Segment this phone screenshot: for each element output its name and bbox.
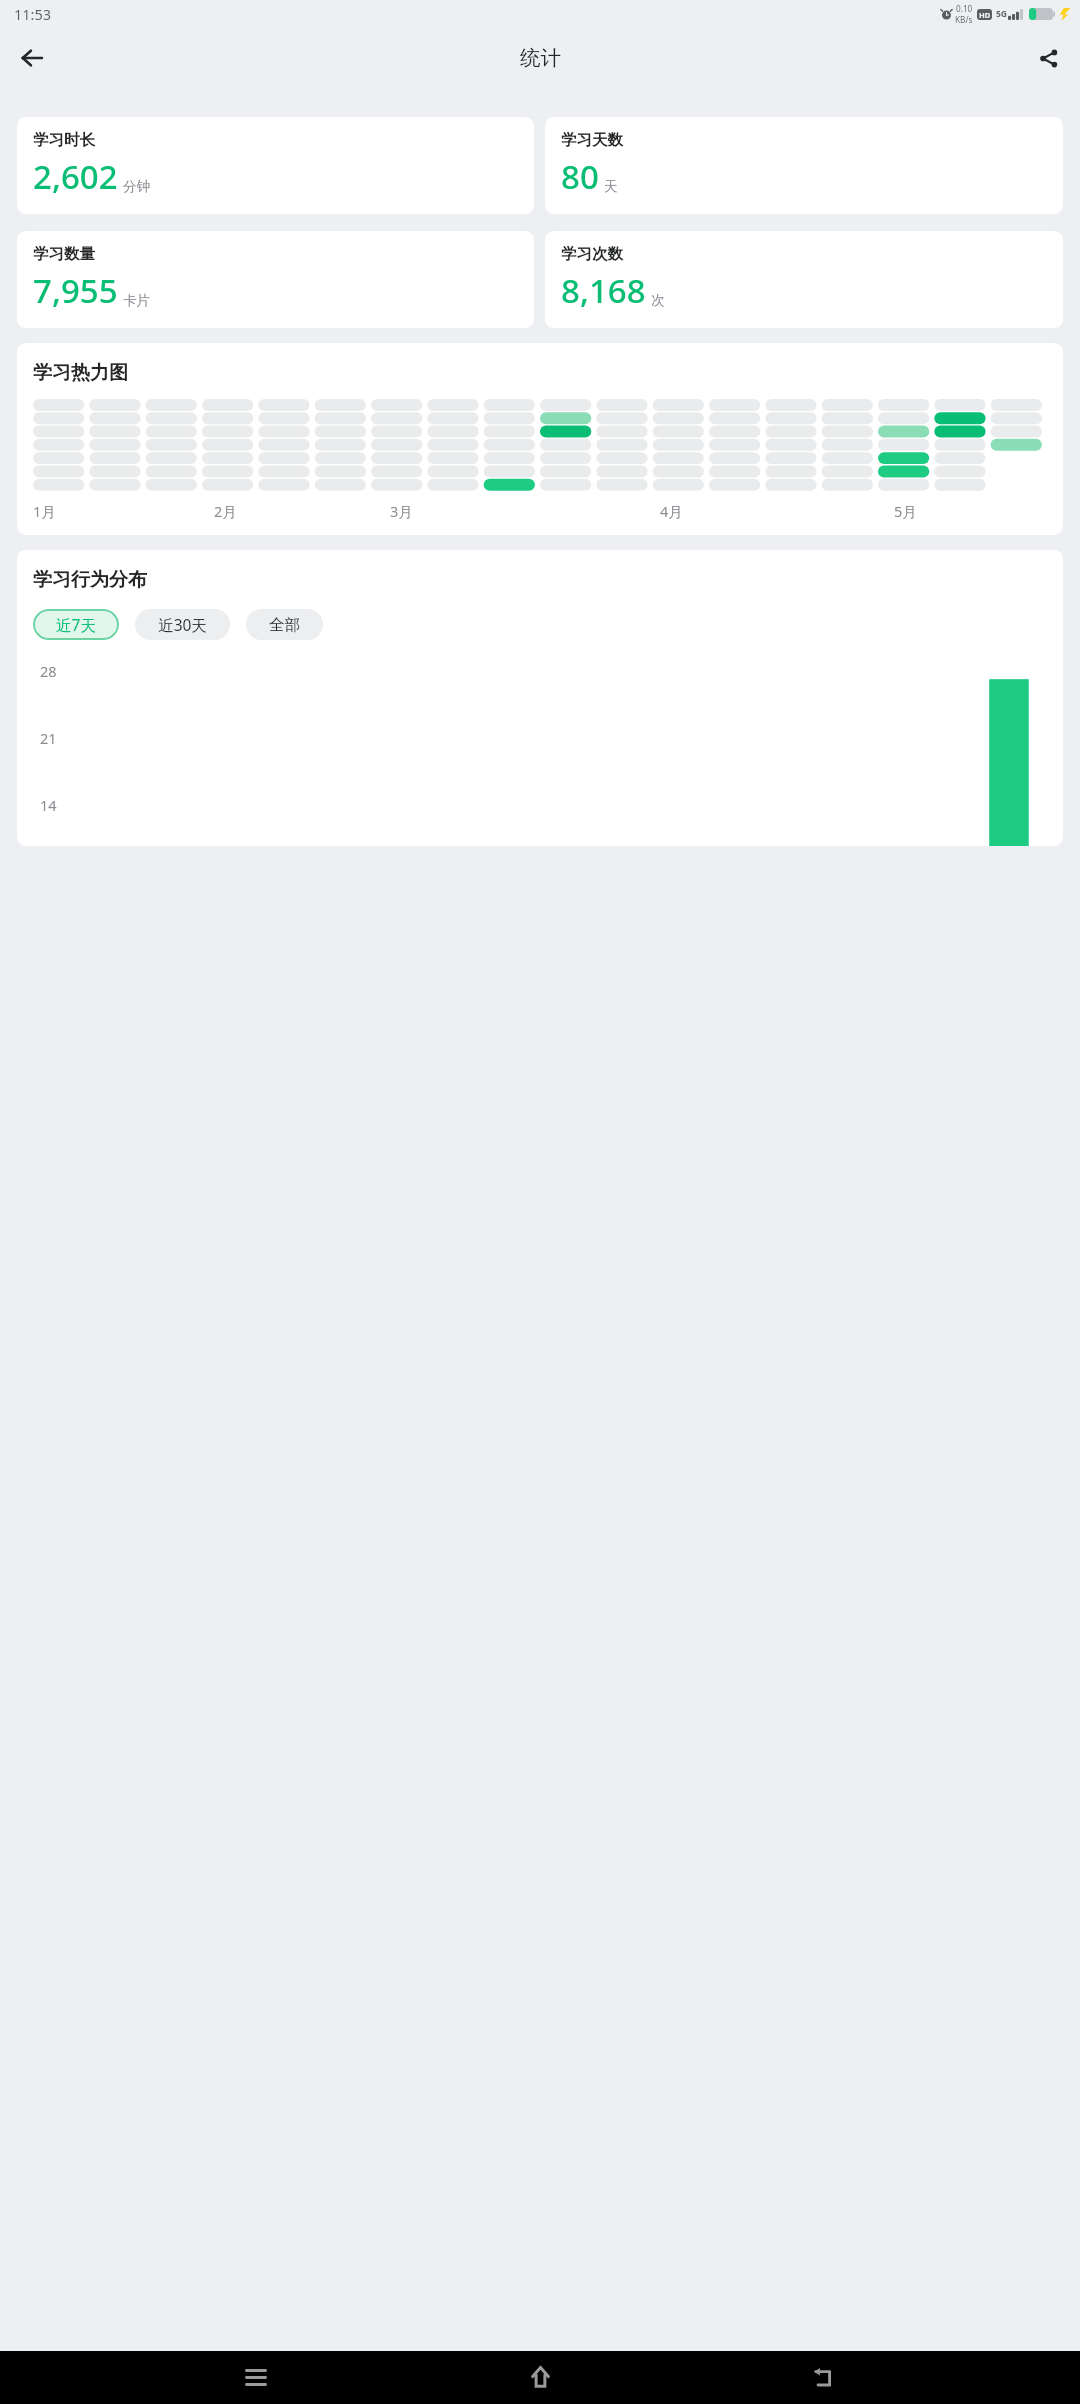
button[interactable]: 学习次数 [545, 231, 1063, 328]
staticText: 学习热力图 [33, 361, 128, 385]
staticText: 学习行为分布 [33, 568, 147, 592]
staticText: 学习时长 [33, 130, 95, 150]
staticText: 1月 [33, 501, 56, 521]
button[interactable]: 全部 [246, 609, 323, 640]
staticText: 5G [996, 8, 1008, 20]
button[interactable]: 近30天 [135, 609, 230, 640]
staticText: 7,955 [33, 268, 118, 313]
button[interactable]: 学习数量 [17, 231, 534, 328]
staticText: 2月 [214, 501, 237, 521]
staticText: 近30天 [158, 614, 207, 635]
staticText: 11:53 [14, 4, 52, 24]
staticText: 21 [40, 728, 57, 748]
staticText: 8,168 [561, 268, 646, 313]
staticText: 全部 [269, 615, 300, 635]
button[interactable]: Share [1024, 34, 1072, 82]
button[interactable]: Back [796, 2351, 852, 2404]
staticText: 统计 [520, 45, 561, 71]
staticText: 学习次数 [561, 244, 623, 264]
staticText: 学习数量 [33, 244, 95, 264]
staticText: HD [979, 10, 991, 20]
button[interactable]: Home [512, 2351, 568, 2404]
staticText: 28 [40, 661, 57, 681]
staticText: 近7天 [56, 614, 96, 635]
staticText: 5月 [894, 501, 917, 521]
staticText: 14 [40, 795, 57, 815]
staticText: 天 [604, 178, 618, 195]
staticText: 3月 [390, 501, 413, 521]
staticText: 0.10 [956, 3, 973, 14]
staticText: 学习天数 [561, 130, 623, 150]
button[interactable]: 学习时长 [17, 117, 534, 214]
staticText: KB/s [955, 14, 973, 25]
staticText: 次 [651, 292, 665, 309]
staticText: 80 [561, 154, 599, 199]
staticText: 卡片 [123, 292, 150, 309]
staticText: 分钟 [123, 178, 150, 195]
button[interactable]: Recent apps [228, 2351, 284, 2404]
button[interactable]: Back [8, 34, 56, 82]
button[interactable]: 学习天数 [545, 117, 1063, 214]
staticText: 4月 [660, 501, 683, 521]
button[interactable]: 近7天 [33, 609, 119, 640]
staticText: 2,602 [33, 154, 118, 199]
